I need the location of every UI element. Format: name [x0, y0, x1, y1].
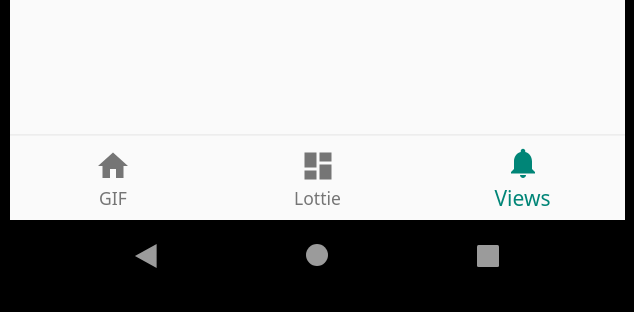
button[interactable]: Lottie [215, 135, 420, 220]
staticText: Views [494, 184, 551, 213]
button[interactable]: Back [121, 232, 169, 280]
staticText: Lottie [294, 186, 341, 210]
button[interactable]: Views [420, 135, 625, 220]
staticText: GIF [99, 186, 127, 210]
button[interactable]: Home [293, 231, 341, 279]
button[interactable]: GIF [10, 135, 215, 220]
button[interactable]: Recent apps [464, 232, 512, 280]
